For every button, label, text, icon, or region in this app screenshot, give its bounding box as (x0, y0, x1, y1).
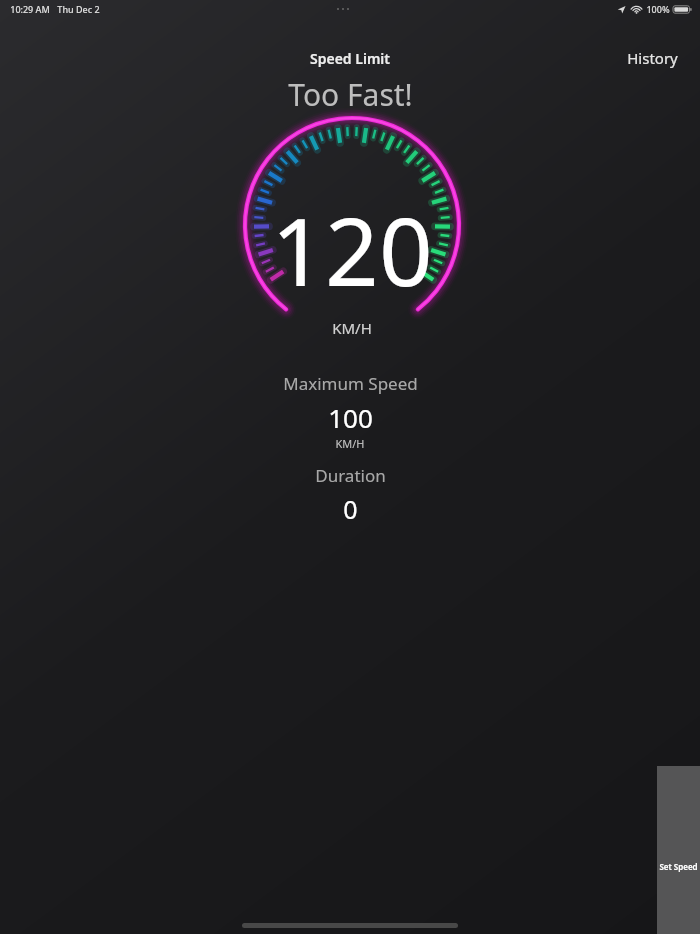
button[interactable]: Speed Limit (302, 46, 398, 71)
staticText: Maximum Speed (283, 372, 418, 395)
staticText: 120 (271, 186, 433, 314)
staticText: 0 (343, 492, 358, 526)
staticText: KM/H (332, 318, 372, 338)
staticText: KM/H (335, 436, 365, 451)
staticText: Set Speed (659, 861, 698, 872)
staticText: Too Fast! (288, 74, 413, 115)
staticText: 10:29 AM (10, 3, 50, 15)
staticText: Duration (315, 464, 386, 487)
staticText: Speed Limit (310, 49, 390, 68)
staticText: Thu Dec 2 (57, 3, 100, 15)
staticText: 100 (328, 400, 373, 435)
staticText: 100% (646, 3, 670, 15)
staticText: History (627, 48, 678, 68)
button[interactable]: History (621, 45, 684, 71)
button[interactable]: Set Speed (657, 766, 700, 934)
